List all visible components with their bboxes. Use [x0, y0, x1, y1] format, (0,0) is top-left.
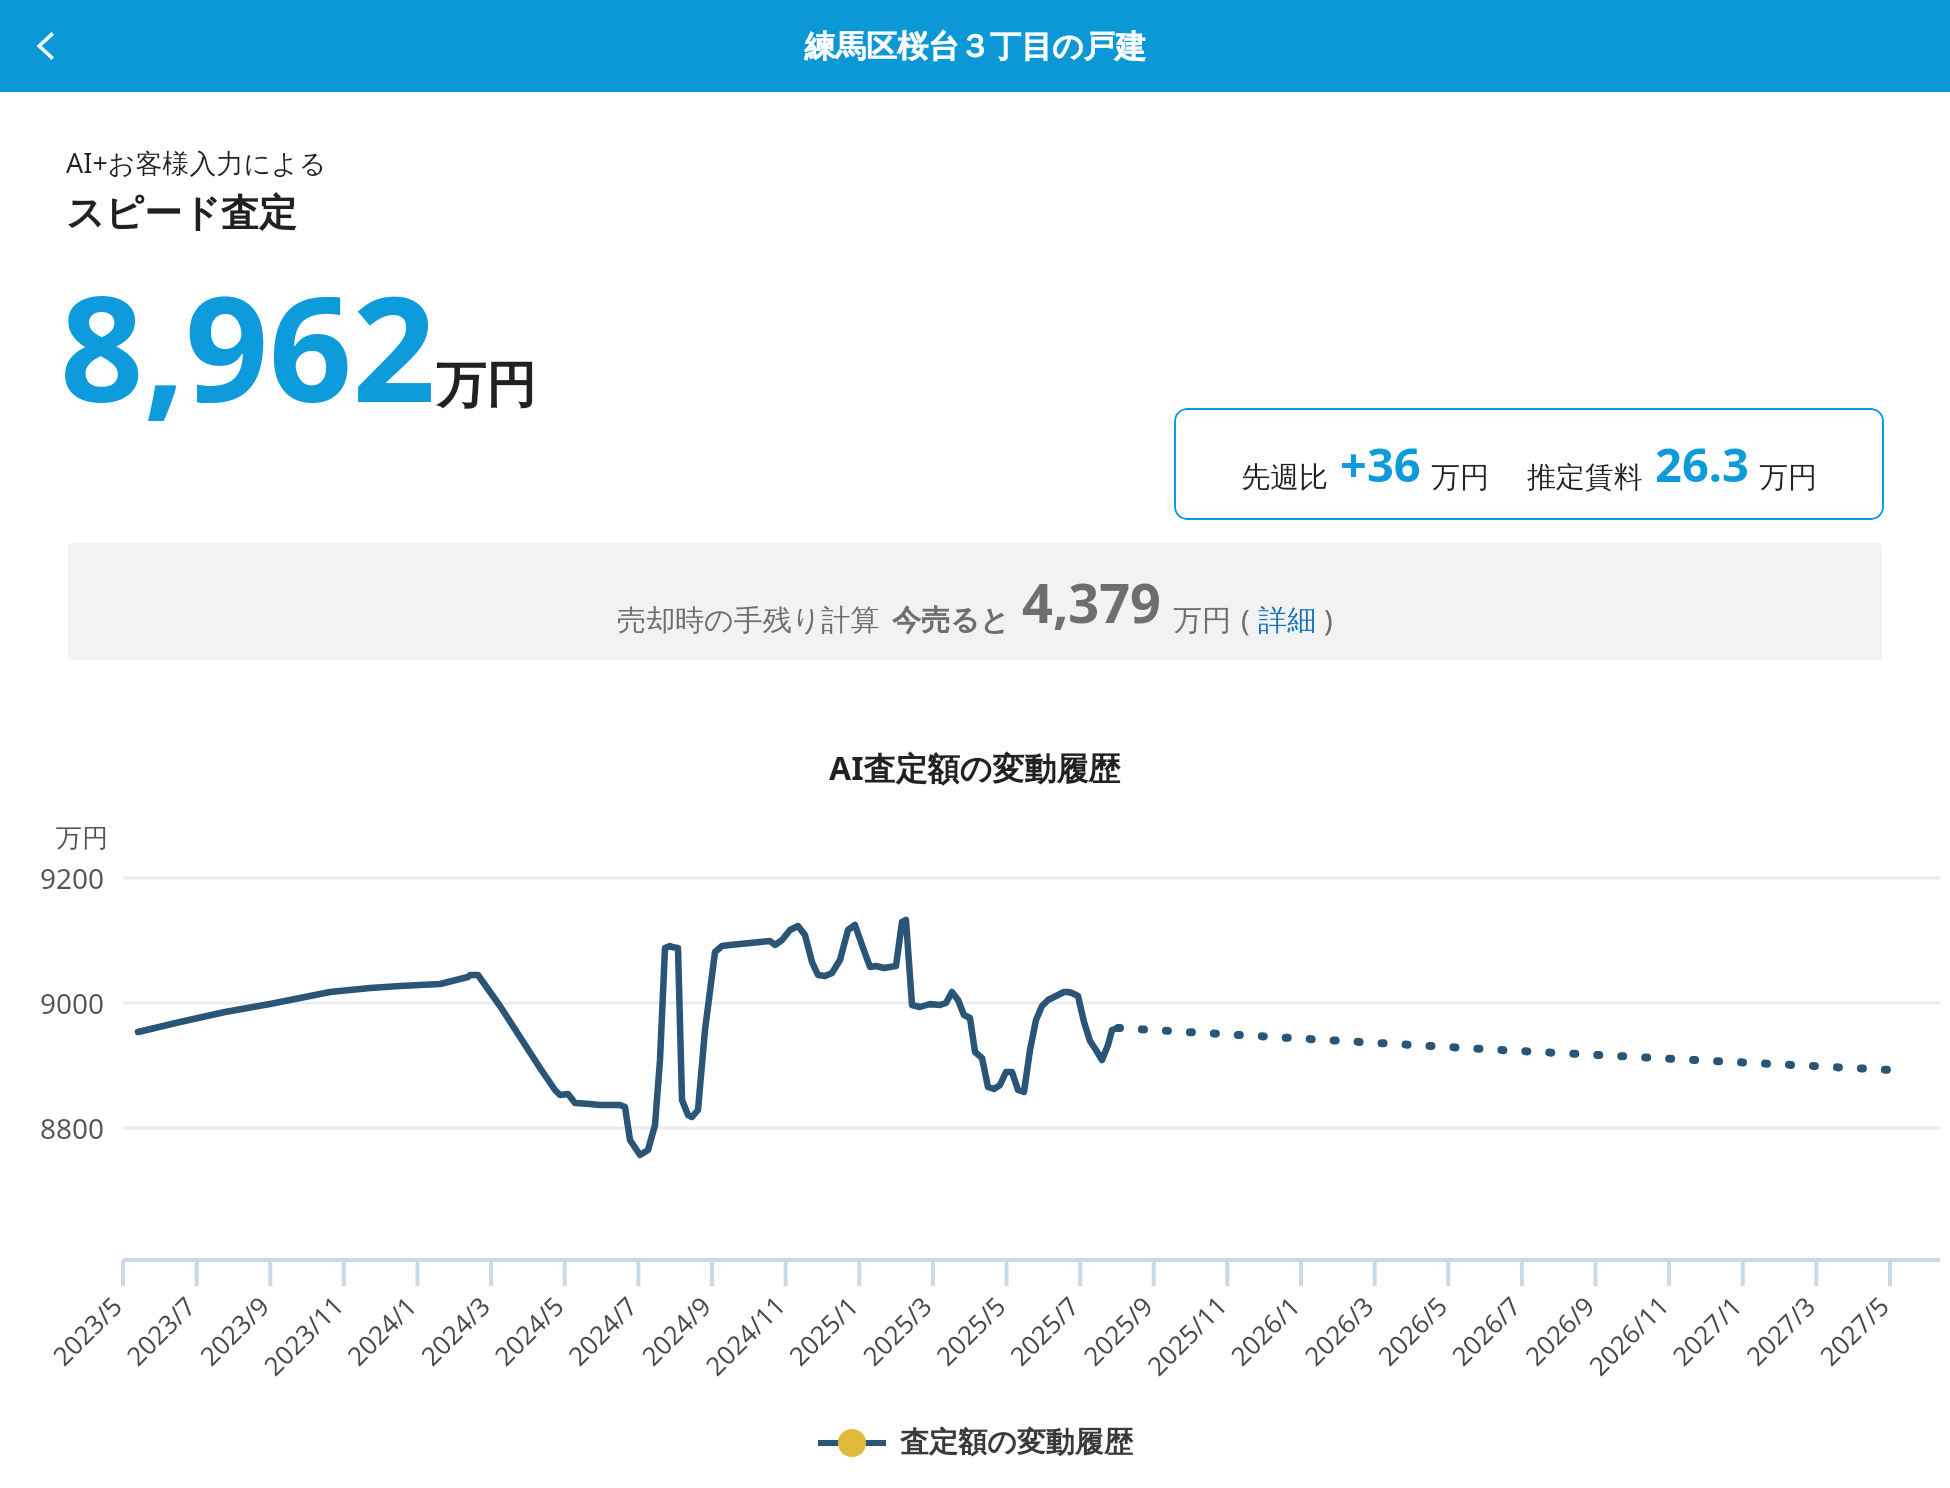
staticText: 26.3 — [1655, 432, 1749, 496]
button[interactable]: 詳細 — [1258, 602, 1316, 639]
button[interactable]: 査定額の変動履歴 — [818, 1424, 1133, 1461]
staticText: ) — [1324, 600, 1333, 639]
staticText: 推定賃料 — [1527, 459, 1643, 496]
staticText: 万円 — [1759, 459, 1817, 496]
staticText: 査定額の変動履歴 — [900, 1424, 1133, 1461]
staticText: 万円 — [1431, 459, 1489, 496]
button[interactable]: 先週比 — [1174, 408, 1884, 520]
staticText: ( — [1241, 600, 1250, 639]
button[interactable]: Back — [12, 12, 80, 80]
staticText: AI査定額の変動履歴 — [829, 746, 1121, 790]
staticText: 万円 — [436, 354, 536, 417]
staticText: 今売ると — [892, 602, 1010, 639]
staticText: 4,379 — [1022, 565, 1161, 639]
staticText: 売却時の手残り計算 — [617, 602, 880, 639]
staticText: 8,962 — [60, 246, 436, 445]
staticText: AI+お客様入力による — [66, 144, 327, 181]
staticText: +36 — [1340, 432, 1421, 496]
staticText: 練馬区桜台３丁目の戸建 — [804, 27, 1146, 66]
staticText: スピード査定 — [66, 189, 297, 237]
staticText: 先週比 — [1241, 459, 1328, 496]
staticText: 万円 — [1173, 602, 1231, 639]
button[interactable]: 売却時の手残り計算 — [68, 543, 1882, 660]
